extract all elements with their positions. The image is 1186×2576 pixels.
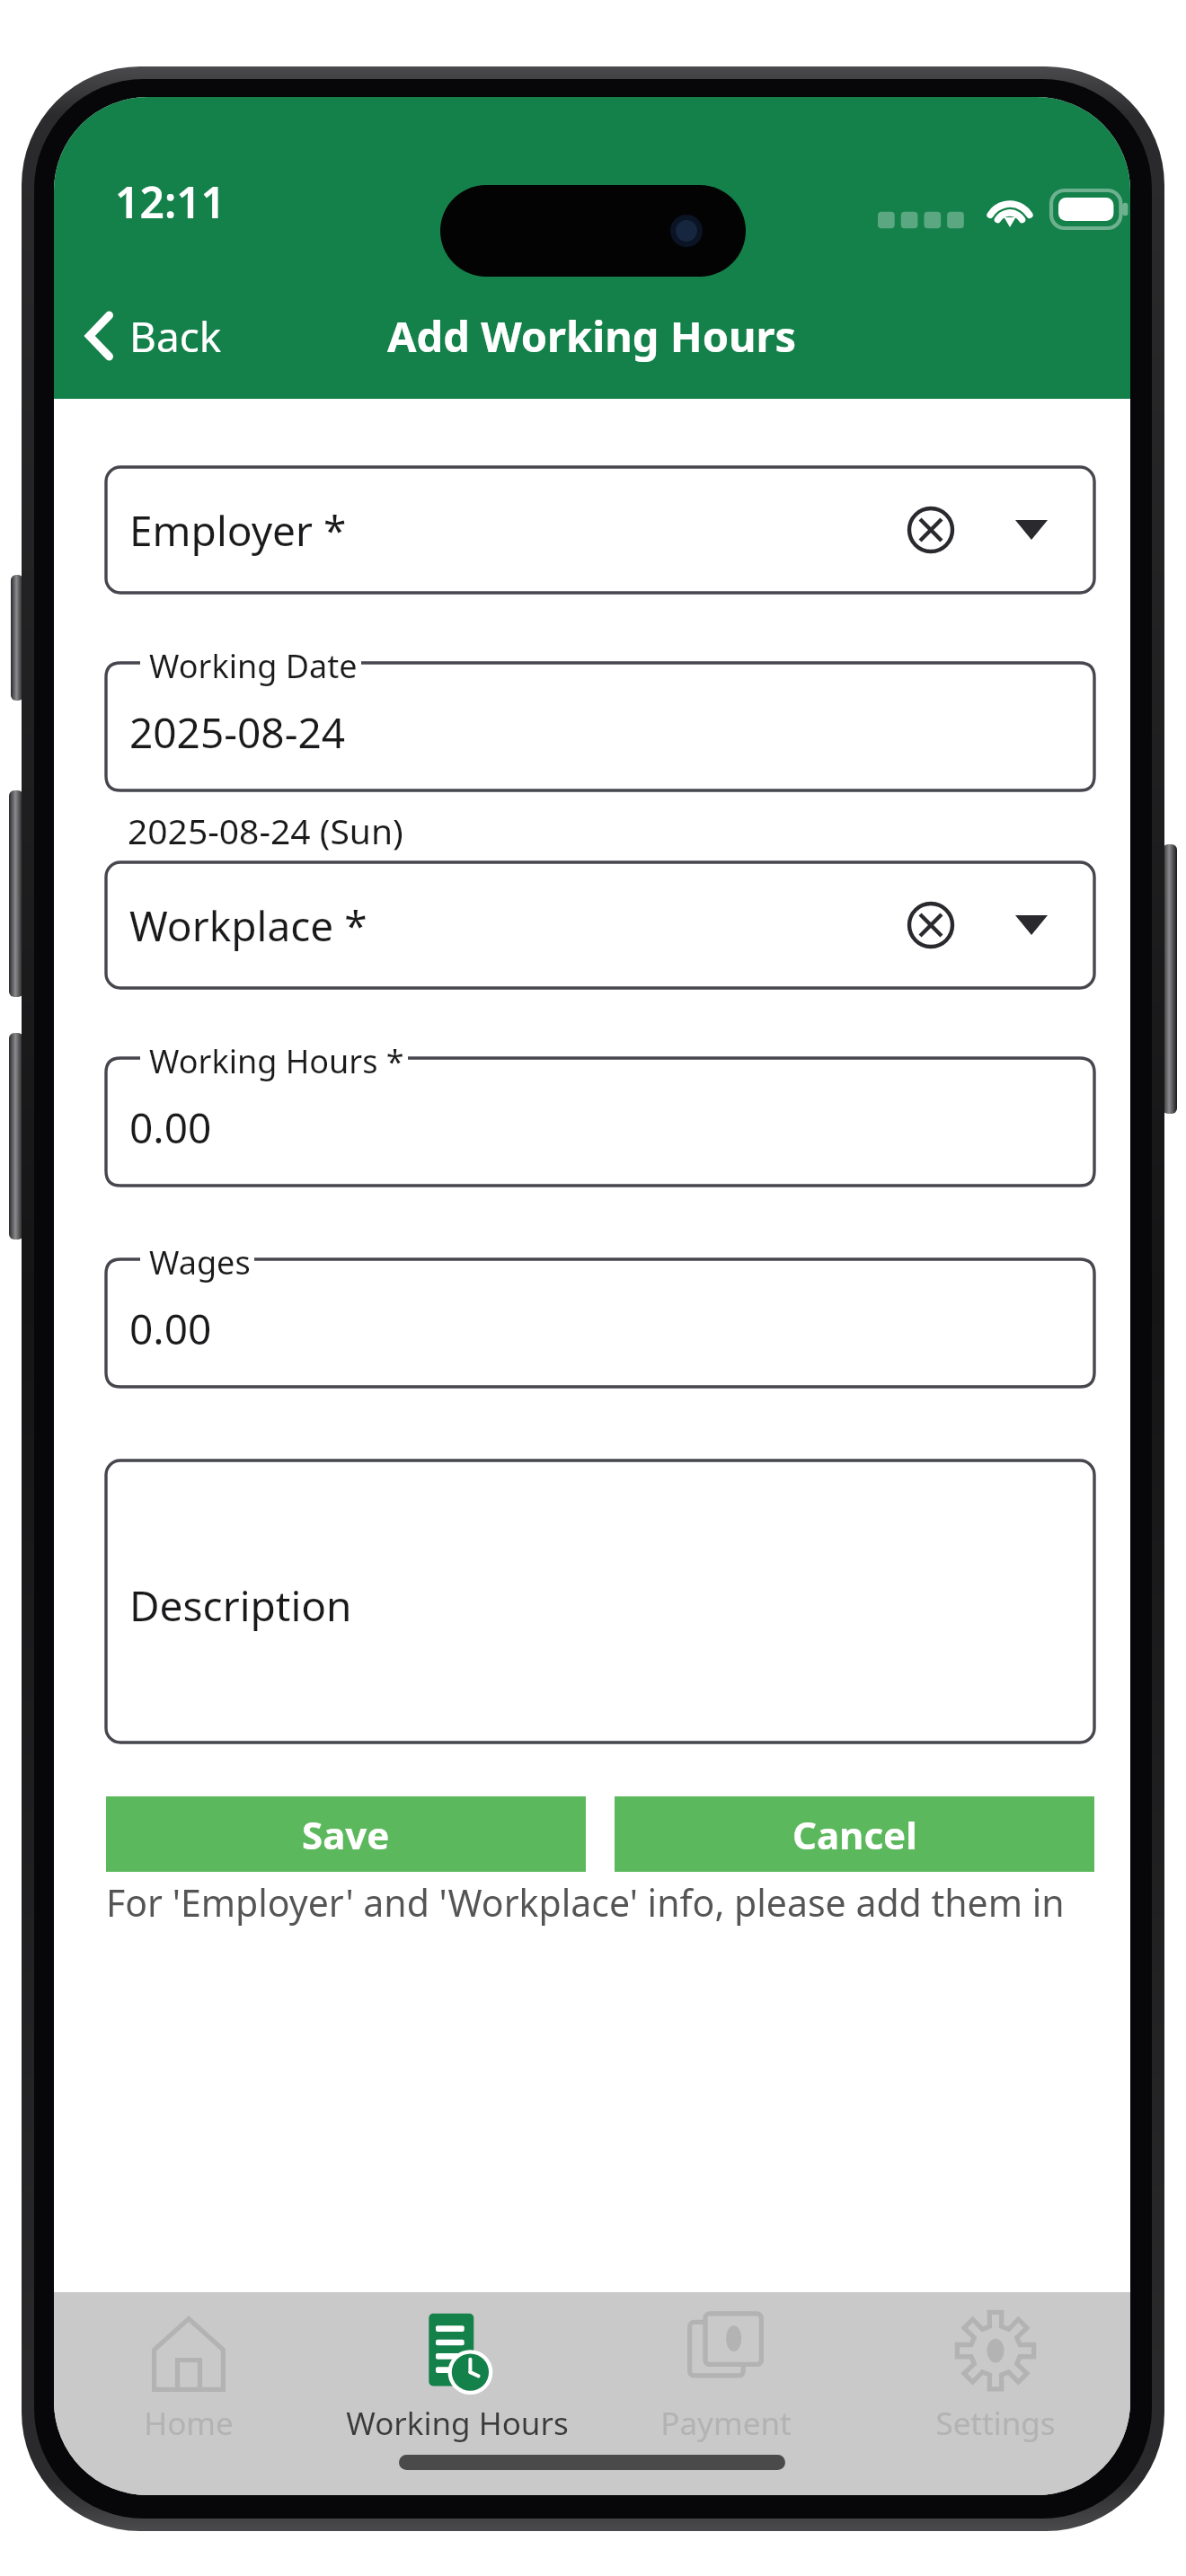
other: Clear (907, 902, 954, 948)
other: Open dropdown (1015, 520, 1048, 540)
staticText: Employer * (129, 502, 347, 559)
staticText: Save (302, 1809, 390, 1860)
staticText: For 'Employer' and 'Workplace' info, ple… (106, 1877, 1130, 1928)
button[interactable]: Description (106, 1460, 1094, 1742)
other: Working Hours (414, 2310, 500, 2396)
staticText: Payment (660, 2402, 792, 2445)
staticText: 12:11 (115, 172, 226, 231)
staticText: Home (144, 2402, 234, 2445)
staticText: Back (129, 308, 222, 365)
staticText: Working Date (149, 644, 358, 688)
button[interactable]: Back (74, 286, 235, 386)
other: Open dropdown (1015, 915, 1048, 935)
other: Home (146, 2310, 232, 2396)
staticText: Workplace * (129, 897, 367, 954)
button[interactable]: Working Hours * (106, 1058, 1094, 1186)
staticText: 0.00 (129, 1099, 212, 1156)
staticText: Cancel (792, 1809, 917, 1860)
button[interactable]: Payment (591, 2301, 861, 2454)
button[interactable]: Settings (861, 2301, 1130, 2454)
staticText: Add Working Hours (387, 307, 797, 365)
button[interactable]: Home (54, 2301, 323, 2454)
button[interactable]: Working Hours (323, 2301, 591, 2454)
staticText: 2025-08-24 (Sun) (128, 807, 403, 854)
staticText: Working Hours * (149, 1039, 404, 1083)
other: Payment (683, 2310, 769, 2396)
button[interactable]: Cancel (615, 1796, 1094, 1872)
button[interactable]: Working Date (106, 663, 1094, 790)
staticText: Description (129, 1577, 352, 1634)
button[interactable]: Workplace * (106, 862, 1094, 988)
button[interactable]: Wages (106, 1259, 1094, 1387)
staticText: 2025-08-24 (129, 704, 346, 761)
button[interactable]: Save (106, 1796, 586, 1872)
staticText: 0.00 (129, 1301, 212, 1357)
other: Clear (907, 507, 954, 553)
staticText: Wages (149, 1240, 251, 1284)
other: Settings (952, 2310, 1039, 2396)
button[interactable]: Employer * (106, 467, 1094, 593)
staticText: Working Hours (346, 2402, 569, 2445)
staticText: Settings (935, 2402, 1056, 2445)
